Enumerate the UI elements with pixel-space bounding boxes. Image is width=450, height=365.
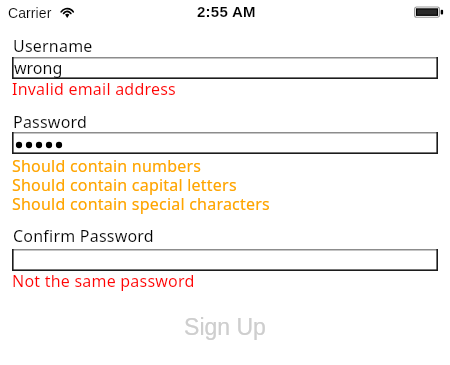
button[interactable]: Password: [12, 132, 438, 154]
button[interactable]: Username: [12, 57, 438, 79]
staticText: Carrier: [8, 5, 52, 21]
staticText: Should contain capital letters: [12, 174, 237, 196]
staticText: Password: [13, 111, 88, 133]
button[interactable]: Sign Up: [0, 307, 450, 347]
staticText: Confirm Password: [13, 225, 154, 247]
staticText: Not the same password: [12, 270, 195, 292]
staticText: Invalid email address: [12, 78, 176, 100]
staticText: Should contain special characters: [12, 193, 270, 215]
staticText: Sign Up: [184, 314, 266, 340]
staticText: Username: [13, 35, 93, 57]
staticText: Should contain numbers: [12, 155, 202, 177]
button[interactable]: Confirm Password: [12, 249, 438, 271]
other: Battery: [414, 6, 444, 19]
staticText: 2:55 AM: [197, 3, 256, 20]
staticText: wrong: [14, 57, 63, 79]
other: Wi-Fi: [59, 2, 76, 17]
